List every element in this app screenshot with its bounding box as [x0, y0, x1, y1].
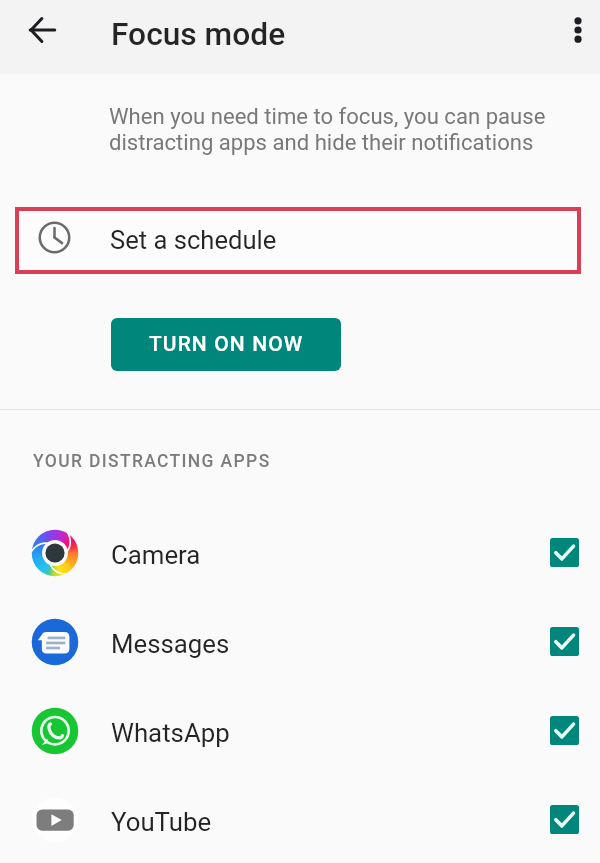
- staticText: YouTube: [111, 807, 212, 837]
- button[interactable]: Allow YouTube: [537, 792, 592, 847]
- button[interactable]: Allow WhatsApp: [537, 703, 592, 758]
- staticText: Focus mode: [111, 16, 286, 53]
- button[interactable]: WhatsApp: [0, 686, 600, 775]
- staticText: Camera: [111, 540, 201, 570]
- button[interactable]: YouTube: [0, 775, 600, 863]
- button[interactable]: Set a schedule: [15, 207, 581, 274]
- staticText: Set a schedule: [110, 225, 277, 255]
- button[interactable]: Allow Messages: [537, 614, 592, 669]
- staticText: TURN ON NOW: [149, 332, 304, 357]
- button[interactable]: More options: [554, 6, 600, 54]
- button[interactable]: Allow Camera: [537, 525, 592, 580]
- button[interactable]: TURN ON NOW: [111, 318, 341, 371]
- button[interactable]: Messages: [0, 597, 600, 686]
- button[interactable]: Camera: [0, 508, 600, 597]
- staticText: WhatsApp: [111, 718, 230, 748]
- staticText: Messages: [111, 629, 230, 659]
- button[interactable]: Back: [18, 6, 66, 54]
- staticText: When you need time to focus, you can pau…: [109, 103, 579, 155]
- staticText: YOUR DISTRACTING APPS: [33, 451, 271, 472]
